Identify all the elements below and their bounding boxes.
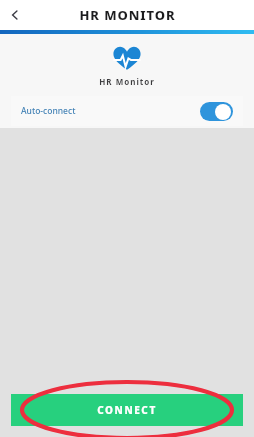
button[interactable]: Auto-connect toggle, on: [200, 102, 233, 121]
staticText: HR MONITOR: [79, 6, 176, 24]
button[interactable]: Auto-connect: [11, 96, 243, 126]
staticText: CONNECT: [97, 403, 157, 417]
staticText: Auto-connect: [21, 105, 76, 117]
staticText: HR Monitor: [99, 76, 155, 87]
button[interactable]: CONNECT: [11, 394, 243, 426]
button[interactable]: Back: [0, 0, 30, 30]
